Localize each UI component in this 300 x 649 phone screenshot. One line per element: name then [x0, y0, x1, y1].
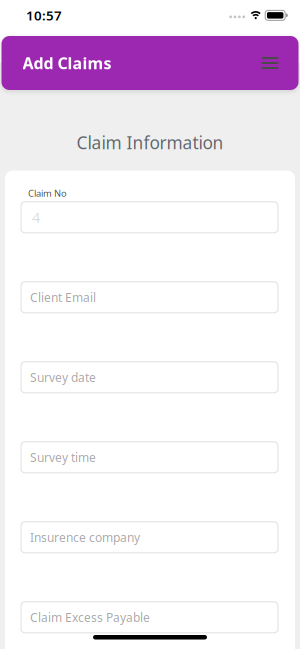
- button[interactable]: Insurence company: [21, 522, 278, 553]
- staticText: Survey date: [30, 369, 96, 385]
- staticText: Add Claims: [22, 52, 111, 74]
- button[interactable]: Survey date: [21, 362, 278, 393]
- staticText: Insurence company: [30, 529, 140, 545]
- staticText: Claim No: [28, 187, 67, 199]
- staticText: Claim Excess Payable: [30, 609, 150, 625]
- staticText: 4: [32, 208, 40, 227]
- button[interactable]: Client Email: [21, 282, 278, 313]
- staticText: Survey time: [30, 449, 96, 465]
- staticText: Client Email: [30, 289, 96, 305]
- staticText: 10:57: [26, 6, 62, 24]
- button[interactable]: Claim Excess Payable: [21, 602, 278, 633]
- button[interactable]: 4: [21, 202, 278, 233]
- button[interactable]: Menu: [261, 47, 298, 79]
- staticText: Claim Information: [76, 131, 223, 154]
- button[interactable]: Survey time: [21, 442, 278, 473]
